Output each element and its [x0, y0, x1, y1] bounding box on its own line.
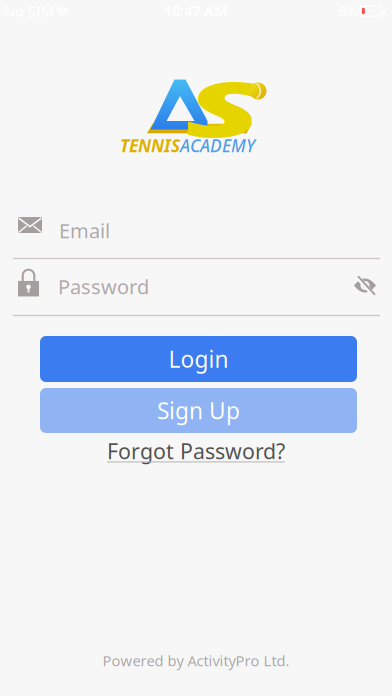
staticText: Powered by ActivityPro Ltd. — [102, 651, 289, 670]
staticText: Login — [168, 344, 228, 374]
staticText: ACADEMY — [180, 134, 255, 157]
staticText: Forgot Password? — [107, 437, 285, 465]
staticText: Sign Up — [157, 395, 240, 425]
staticText: S — [202, 57, 244, 158]
button[interactable]: Forgot Password? — [107, 437, 285, 465]
button[interactable]: Sign Up — [40, 388, 357, 433]
staticText: Email — [59, 217, 110, 244]
staticText: TENNIS — [120, 134, 180, 157]
button[interactable]: Login — [40, 336, 357, 382]
button[interactable]: Show password — [354, 276, 376, 295]
staticText: Password — [58, 273, 149, 300]
